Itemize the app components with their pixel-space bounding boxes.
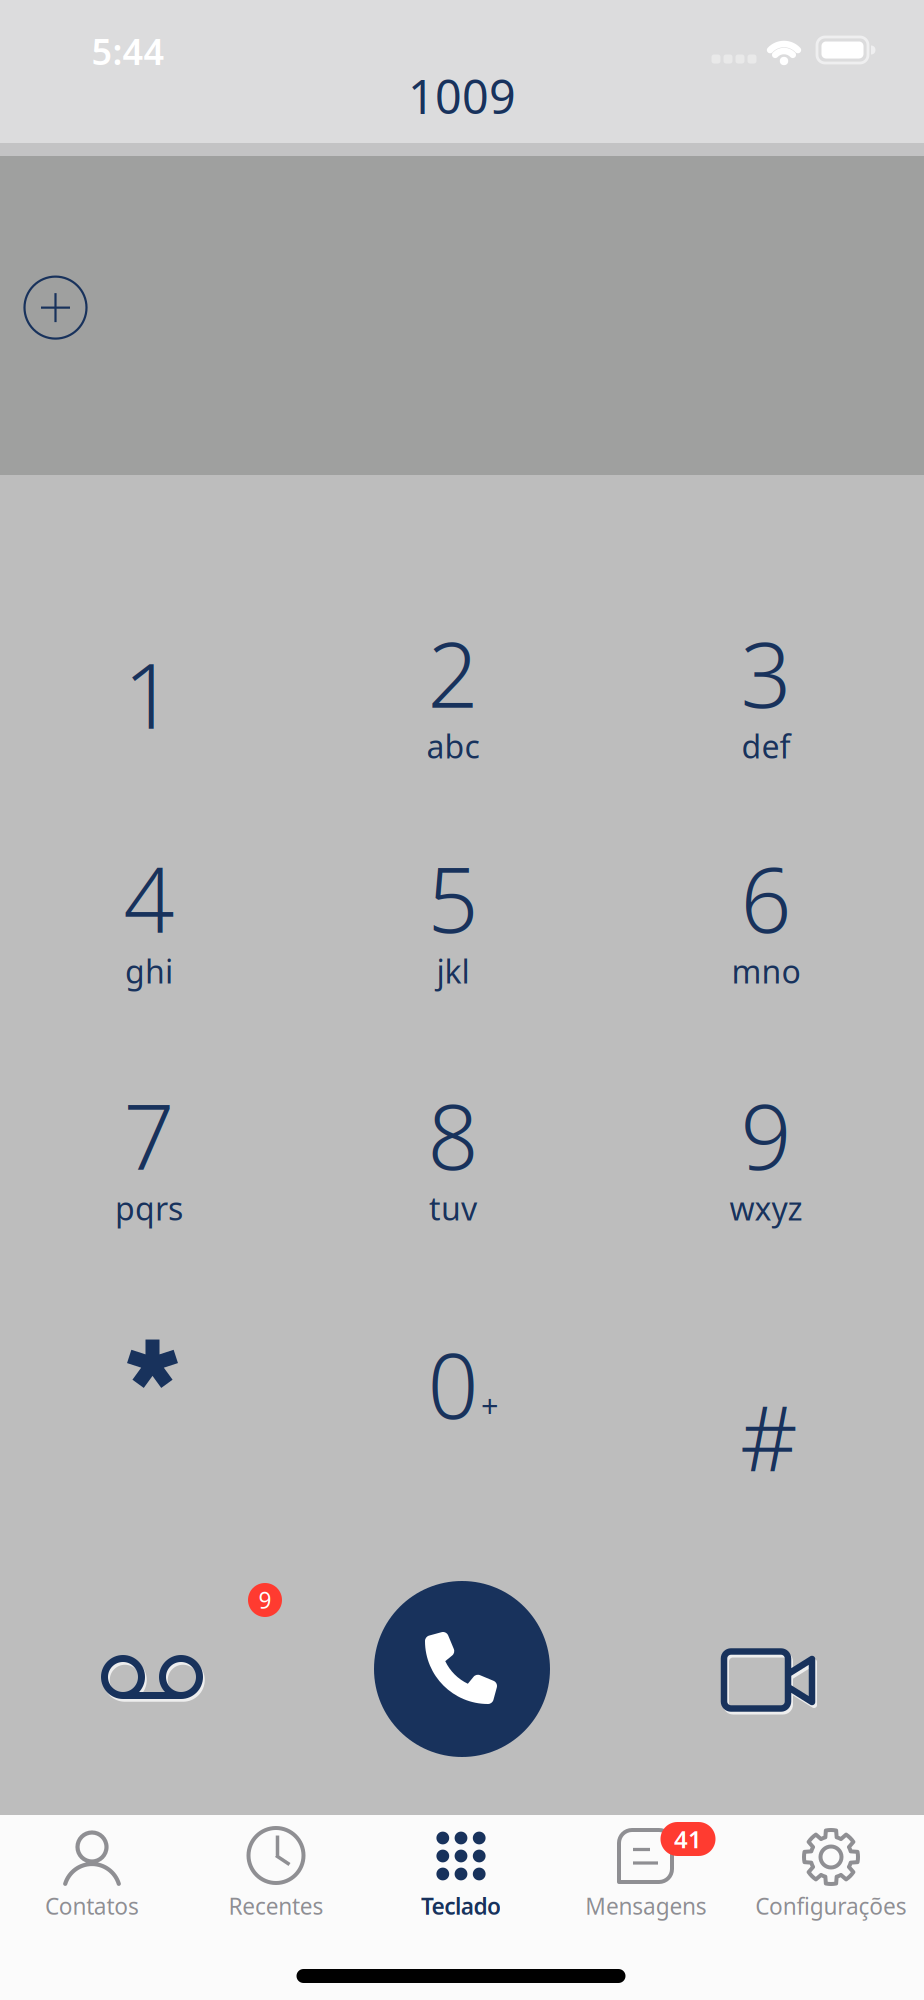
staticText: ghi bbox=[125, 950, 173, 992]
staticText: + bbox=[481, 1385, 499, 1425]
staticText: mno bbox=[731, 950, 800, 992]
button[interactable]: Adicionar contato bbox=[5, 258, 105, 358]
staticText: jkl bbox=[436, 950, 469, 992]
staticText: 7 bbox=[123, 1076, 174, 1194]
staticText: 9 bbox=[258, 1585, 271, 1615]
staticText: 41 bbox=[674, 1823, 702, 1855]
button[interactable]: # bbox=[644, 1357, 894, 1517]
button[interactable]: 3 bbox=[641, 614, 891, 804]
button[interactable]: Ligar bbox=[362, 1569, 562, 1769]
staticText: wxyz bbox=[729, 1187, 802, 1229]
staticText: Recentes bbox=[228, 1891, 323, 1921]
staticText: 1009 bbox=[408, 65, 516, 127]
staticText: 8 bbox=[427, 1076, 478, 1194]
button[interactable]: Chamada de vídeo bbox=[688, 1620, 848, 1740]
staticText: 1 bbox=[123, 635, 174, 753]
staticText: tuv bbox=[429, 1187, 477, 1229]
staticText: abc bbox=[426, 725, 479, 767]
staticText: Contatos bbox=[45, 1891, 139, 1921]
staticText: def bbox=[741, 725, 790, 767]
staticText: # bbox=[740, 1378, 798, 1496]
button[interactable]: Correio de voz bbox=[57, 1617, 247, 1737]
button[interactable]: 1 bbox=[24, 614, 274, 774]
staticText: Mensagens bbox=[585, 1891, 707, 1921]
button[interactable]: 4 bbox=[24, 839, 274, 1029]
button[interactable]: 9 bbox=[641, 1076, 891, 1266]
staticText: 9 bbox=[740, 1076, 791, 1194]
staticText: pqrs bbox=[115, 1187, 183, 1229]
button[interactable]: 5 bbox=[328, 839, 578, 1029]
button[interactable]: 8 bbox=[328, 1076, 578, 1266]
staticText: 2 bbox=[427, 614, 478, 732]
button[interactable]: 0 bbox=[328, 1289, 578, 1479]
staticText: 5 bbox=[427, 839, 478, 957]
staticText: Teclado bbox=[421, 1891, 501, 1921]
staticText: 5:44 bbox=[91, 27, 164, 75]
button[interactable]: Teclado bbox=[369, 1811, 553, 1936]
button[interactable]: 2 bbox=[328, 614, 578, 804]
staticText: 0 bbox=[427, 1325, 478, 1443]
button[interactable]: 6 bbox=[641, 839, 891, 1029]
staticText: 4 bbox=[123, 839, 174, 957]
button[interactable]: 7 bbox=[24, 1076, 274, 1266]
button[interactable] bbox=[27, 1279, 277, 1449]
staticText: 6 bbox=[740, 839, 791, 957]
button[interactable]: 41 bbox=[554, 1811, 738, 1936]
button[interactable]: Configurações bbox=[739, 1811, 923, 1936]
staticText: Configurações bbox=[755, 1891, 907, 1921]
button[interactable]: Contatos bbox=[0, 1811, 184, 1936]
staticText: 3 bbox=[740, 614, 791, 732]
button[interactable]: Recentes bbox=[184, 1811, 368, 1936]
